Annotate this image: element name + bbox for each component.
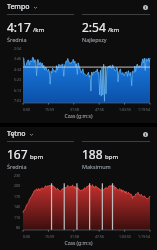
staticText: 230: [14, 173, 21, 178]
staticText: 1:19:54: [138, 107, 150, 112]
staticText: /km: [33, 26, 45, 34]
staticText: /km: [108, 26, 120, 34]
button[interactable]: Informacje: [140, 2, 150, 12]
staticText: 170: [14, 194, 21, 199]
staticText: Średnia: [7, 36, 27, 43]
staticText: 31:58: [70, 107, 79, 112]
staticText: Tętno: [7, 129, 26, 139]
staticText: 2:54: [82, 19, 106, 35]
staticText: 200: [14, 183, 21, 188]
staticText: 188: [82, 146, 103, 162]
staticText: 80: [16, 225, 21, 230]
staticText: 5:23: [14, 77, 21, 82]
staticText: Maksimum: [82, 163, 111, 170]
staticText: 1:19:54: [138, 234, 150, 239]
staticText: 47:56: [95, 107, 104, 112]
button[interactable]: Tętno: [7, 129, 36, 139]
staticText: 0:00: [23, 107, 30, 112]
staticText: Czas (g:m:s): [7, 240, 150, 247]
staticText: 15:59: [45, 234, 54, 239]
staticText: bpm: [30, 153, 43, 161]
staticText: 4:17: [7, 19, 31, 35]
staticText: bpm: [105, 153, 118, 161]
staticText: 4:34: [14, 67, 21, 72]
staticText: 167: [7, 146, 28, 162]
staticText: 2:54: [14, 46, 21, 51]
staticText: Średnia: [7, 163, 27, 170]
staticText: 47:56: [95, 234, 104, 239]
staticText: Czas (g:m:s): [7, 113, 150, 120]
staticText: 0:00: [23, 234, 30, 239]
staticText: 140: [14, 204, 21, 209]
staticText: Tempo: [7, 2, 30, 12]
staticText: 1:03:55: [119, 107, 131, 112]
staticText: 1:03:55: [119, 234, 131, 239]
staticText: 3:46: [14, 56, 21, 61]
staticText: 6:13: [14, 88, 21, 93]
button[interactable]: Informacje: [140, 129, 150, 139]
staticText: 15:59: [45, 107, 54, 112]
staticText: 7:03: [14, 98, 21, 103]
button[interactable]: Tempo: [7, 2, 40, 12]
staticText: 31:58: [70, 234, 79, 239]
staticText: Najlepszy: [82, 36, 107, 43]
staticText: 110: [14, 215, 21, 220]
